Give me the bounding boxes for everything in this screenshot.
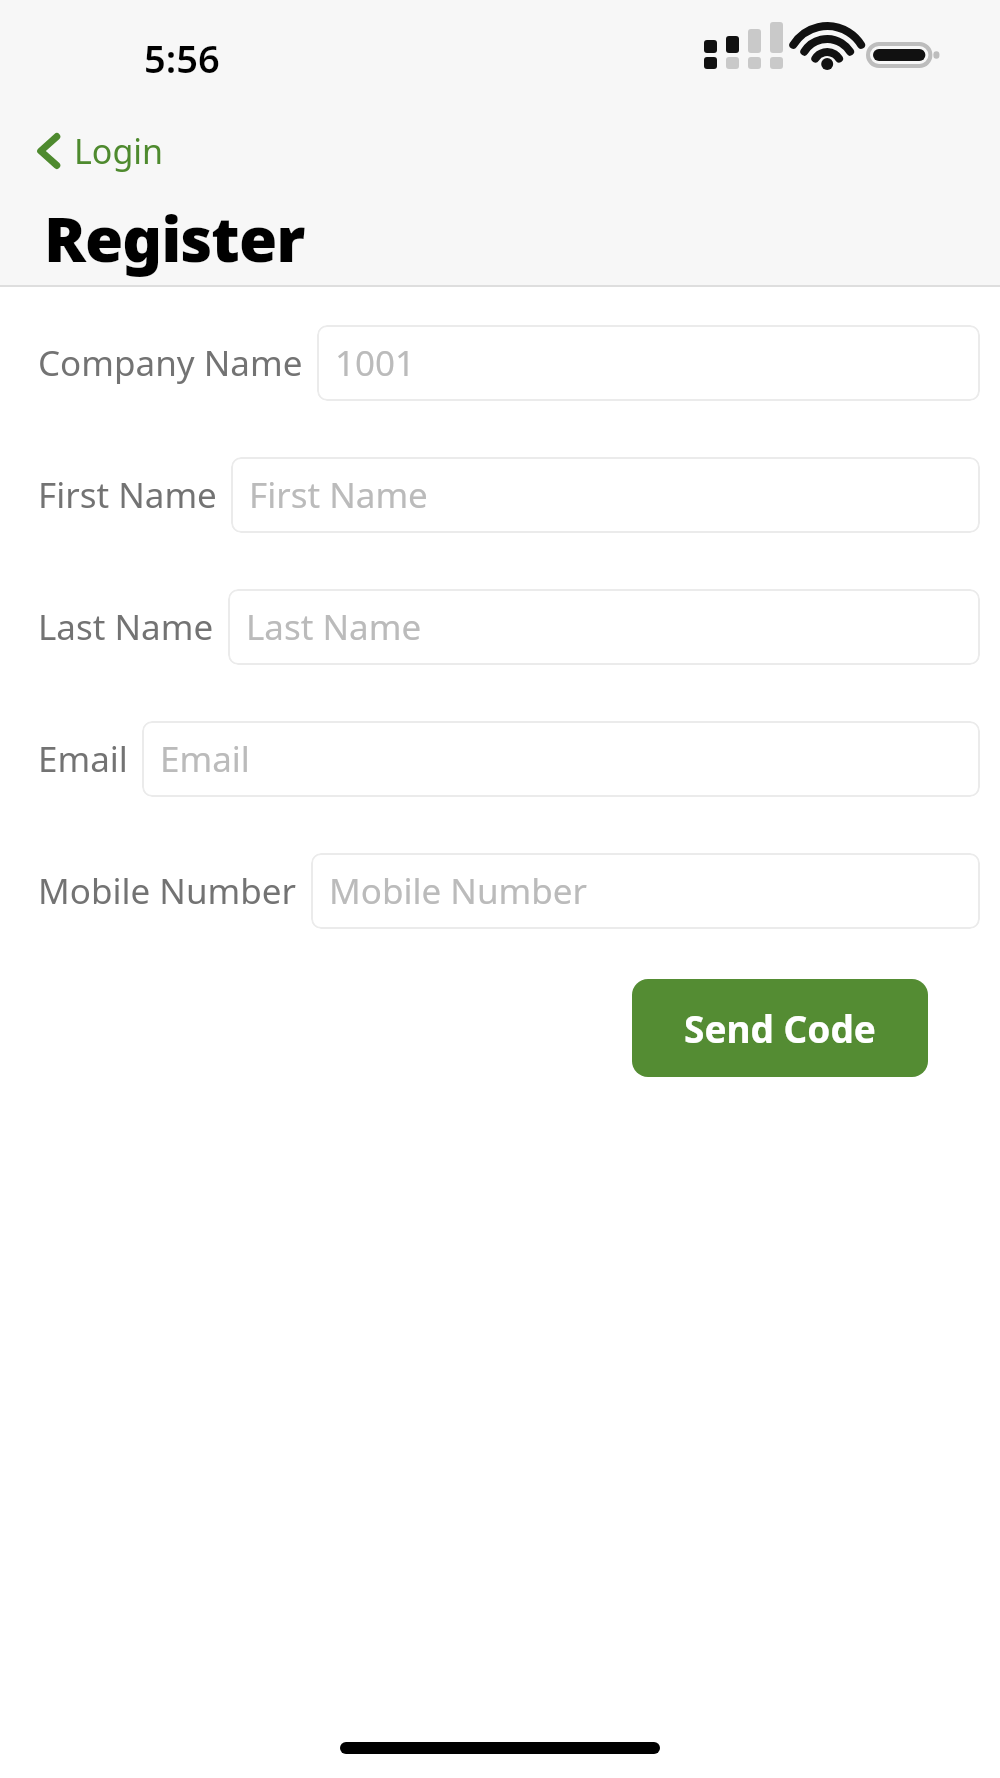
staticText: Register <box>44 196 305 280</box>
staticText: Mobile Number <box>329 867 588 915</box>
button[interactable]: Company Name <box>38 297 980 429</box>
staticText: Login <box>74 128 164 174</box>
staticText: 5:56 <box>144 32 220 84</box>
staticText: 1001 <box>335 339 416 387</box>
button[interactable]: Last Name <box>38 561 980 693</box>
button[interactable]: First Name <box>38 429 980 561</box>
staticText: Send Code <box>684 1003 876 1053</box>
button[interactable]: Email <box>38 693 980 825</box>
staticText: First Name <box>249 471 428 519</box>
button[interactable]: Send Code <box>632 979 928 1077</box>
staticText: Email <box>160 735 250 783</box>
staticText: Mobile Number <box>38 867 297 915</box>
staticText: Company Name <box>38 339 303 387</box>
button[interactable]: Login <box>30 124 170 178</box>
staticText: Last Name <box>38 603 214 651</box>
staticText: First Name <box>38 471 217 519</box>
staticText: Last Name <box>246 603 422 651</box>
staticText: Email <box>38 735 128 783</box>
button[interactable]: Mobile Number <box>38 825 980 957</box>
